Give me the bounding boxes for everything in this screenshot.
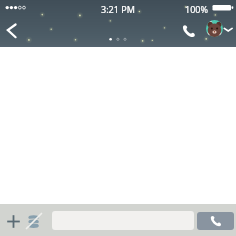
- button[interactable]: Call: [182, 24, 196, 38]
- button[interactable]: Add: [3, 211, 24, 232]
- button[interactable]: Stickers: [27, 212, 46, 231]
- button[interactable]: Back: [0, 19, 26, 43]
- staticText: 3:21 PM: [101, 3, 135, 15]
- button[interactable]: Profile: [206, 20, 223, 37]
- button[interactable]: Expand: [223, 25, 234, 35]
- staticText: 100%: [185, 3, 208, 15]
- button[interactable]: Call: [197, 212, 234, 230]
